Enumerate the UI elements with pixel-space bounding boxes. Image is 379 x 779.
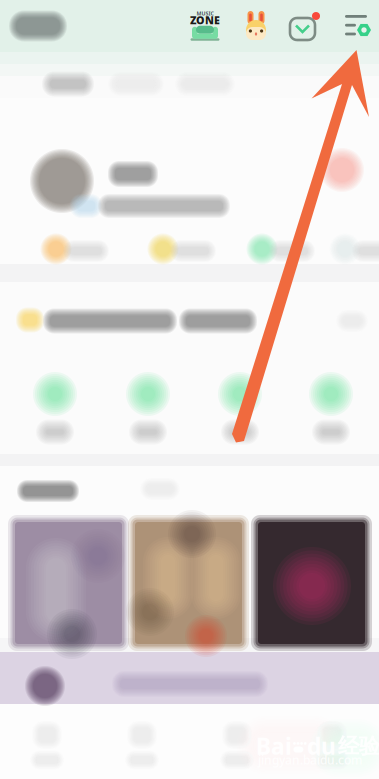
staticText: du xyxy=(307,731,336,761)
button[interactable]: Featured video xyxy=(251,515,372,651)
button[interactable]: Music Zone xyxy=(189,9,221,43)
staticText: 经验 xyxy=(338,733,379,759)
button[interactable]: Messages xyxy=(289,10,321,42)
button[interactable]: Menu xyxy=(345,12,372,40)
staticText: MUSIC xyxy=(196,10,213,17)
button[interactable]: Profile xyxy=(243,10,269,42)
button[interactable]: Featured video xyxy=(8,515,129,651)
button[interactable]: Featured video xyxy=(128,515,249,651)
staticText: jingyan.baidu.com xyxy=(258,752,362,768)
staticText: ZONE xyxy=(190,13,220,27)
